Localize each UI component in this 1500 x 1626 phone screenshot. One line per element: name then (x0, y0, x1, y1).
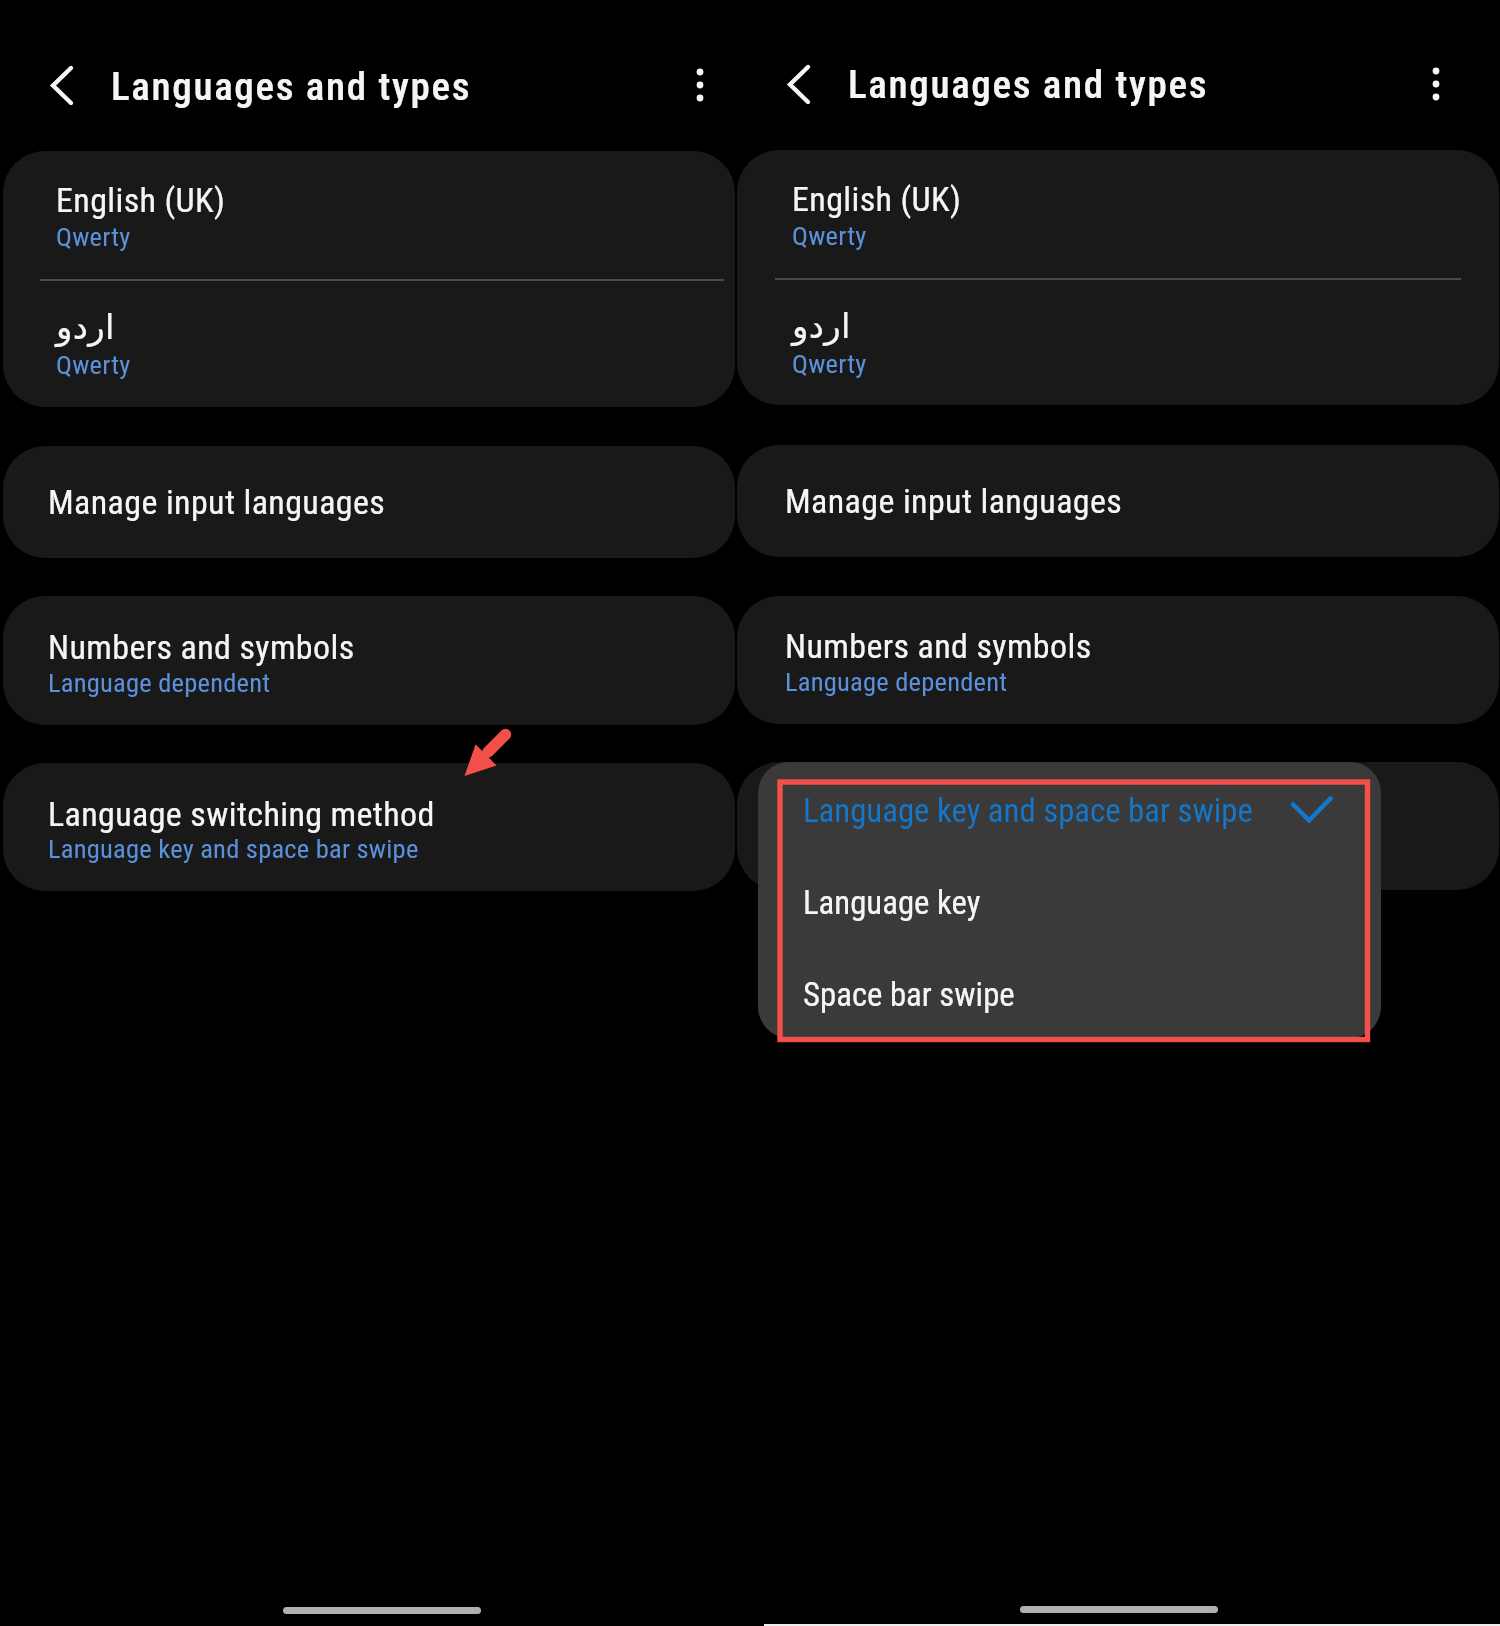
staticText: Languages and types (111, 64, 472, 110)
staticText: English (UK) (56, 180, 226, 220)
button[interactable] (3, 763, 735, 891)
staticText: Manage input languages (48, 482, 386, 522)
staticText: Language key and space bar swipe (803, 792, 1253, 830)
staticText: Numbers and symbols (785, 626, 1092, 666)
button[interactable] (737, 150, 1499, 278)
button[interactable] (737, 278, 1499, 405)
staticText: Qwerty (792, 220, 867, 251)
staticText: Language dependent (48, 667, 271, 698)
staticText: English (UK) (792, 179, 962, 219)
staticText: Qwerty (56, 349, 131, 380)
button[interactable] (3, 596, 735, 725)
staticText: Language key and space bar swipe (48, 833, 419, 864)
staticText: Language dependent (785, 666, 1008, 697)
button[interactable] (737, 596, 1499, 724)
staticText: Languages and types (848, 62, 1209, 108)
staticText: Qwerty (56, 221, 131, 252)
button[interactable] (758, 762, 1381, 854)
staticText: Manage input languages (785, 481, 1123, 521)
staticText: Space bar swipe (803, 976, 1015, 1014)
button[interactable] (758, 946, 1381, 1038)
staticText: Numbers and symbols (48, 627, 355, 667)
staticText: Language switching method (48, 794, 435, 834)
button[interactable]: More options (1410, 45, 1462, 123)
button[interactable] (3, 279, 735, 407)
button[interactable] (3, 151, 735, 279)
staticText: اردو (792, 306, 851, 346)
staticText: Qwerty (792, 348, 867, 379)
staticText: Language key (803, 884, 981, 922)
button[interactable]: More options (674, 46, 726, 124)
button[interactable] (737, 762, 1499, 890)
staticText: Language switching method (785, 793, 1172, 833)
button[interactable] (737, 445, 1499, 557)
button[interactable]: Back (39, 54, 85, 117)
staticText: اردو (56, 307, 115, 347)
button[interactable] (758, 854, 1381, 946)
button[interactable] (3, 446, 735, 558)
button[interactable]: Back (776, 53, 822, 116)
